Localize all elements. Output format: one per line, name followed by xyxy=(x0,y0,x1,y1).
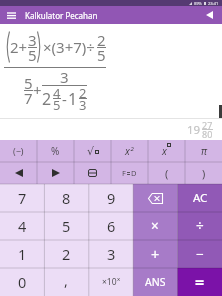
staticText: − xyxy=(196,245,204,263)
staticText: x² xyxy=(125,144,134,158)
staticText: - xyxy=(62,89,67,109)
staticText: 80 xyxy=(202,128,213,140)
button[interactable]: ×10 xyxy=(89,268,133,296)
staticText: 5 xyxy=(97,45,106,65)
button[interactable]: 0 xyxy=(0,268,44,296)
staticText: 3 xyxy=(60,67,69,87)
staticText: + xyxy=(151,244,160,264)
button[interactable]: 1 xyxy=(0,240,44,268)
button[interactable]: 2 xyxy=(44,240,88,268)
button[interactable]: % xyxy=(37,140,74,162)
staticText: x xyxy=(117,275,121,283)
staticText: = xyxy=(195,271,205,293)
staticText: ) xyxy=(202,166,206,181)
staticText: √ xyxy=(87,145,95,158)
button[interactable]: (−) xyxy=(0,140,37,162)
staticText: x xyxy=(162,144,167,158)
button[interactable]: , xyxy=(44,268,88,296)
staticText: ×(3+7)÷ xyxy=(43,37,95,57)
button[interactable]: 7 xyxy=(0,184,44,212)
staticText: 2 xyxy=(42,88,52,110)
staticText: D xyxy=(131,168,137,178)
staticText: 4 xyxy=(18,216,27,236)
staticText: F xyxy=(122,168,126,178)
staticText: 0 xyxy=(18,272,27,292)
staticText: 3 xyxy=(79,96,87,114)
staticText: 3 xyxy=(28,30,37,50)
staticText: ×10 xyxy=(102,276,117,288)
staticText: 23:41 xyxy=(208,1,219,6)
button[interactable]: 5 xyxy=(44,212,88,240)
staticText: % xyxy=(51,144,60,158)
staticText: , xyxy=(64,271,68,290)
staticText: 1 xyxy=(68,88,78,110)
button[interactable]: ÷ xyxy=(178,212,222,240)
staticText: ÷ xyxy=(196,217,204,235)
button[interactable]: 8 xyxy=(44,184,88,212)
staticText: 7 xyxy=(18,188,27,208)
button[interactable]: 6 xyxy=(89,212,133,240)
staticText: + xyxy=(33,80,42,100)
button[interactable]: ANS xyxy=(133,268,177,296)
button[interactable] xyxy=(133,184,177,212)
staticText: AC xyxy=(193,190,208,206)
button[interactable]: ) xyxy=(185,162,222,184)
staticText: 2 xyxy=(97,30,106,50)
button[interactable]: F xyxy=(111,162,148,184)
staticText: 4 xyxy=(53,84,61,102)
button[interactable] xyxy=(37,162,74,184)
button[interactable]: 9 xyxy=(89,184,133,212)
staticText: 3 xyxy=(107,244,116,264)
staticText: 6 xyxy=(107,216,116,236)
staticText: Kalkulator Pecahan xyxy=(25,10,98,21)
button[interactable] xyxy=(5,9,17,21)
staticText: 2 xyxy=(79,84,87,102)
button[interactable]: × xyxy=(133,212,177,240)
button[interactable]: x xyxy=(148,140,185,162)
staticText: 5 xyxy=(53,96,61,114)
staticText: (−) xyxy=(13,145,24,157)
staticText: 27 xyxy=(202,119,213,131)
staticText: ANS xyxy=(145,275,166,289)
button[interactable]: x² xyxy=(111,140,148,162)
button[interactable]: − xyxy=(178,240,222,268)
staticText: 89% xyxy=(194,1,202,6)
staticText: 5 xyxy=(28,45,37,65)
button[interactable]: 3 xyxy=(89,240,133,268)
button[interactable] xyxy=(204,10,214,20)
staticText: π xyxy=(201,144,207,158)
staticText: × xyxy=(151,217,159,235)
staticText: 8 xyxy=(62,188,71,208)
button[interactable]: + xyxy=(133,240,177,268)
staticText: 2+ xyxy=(10,37,28,57)
staticText: 5 xyxy=(62,216,71,236)
staticText: 7 xyxy=(24,88,33,108)
button[interactable] xyxy=(74,162,111,184)
button[interactable]: 4 xyxy=(0,212,44,240)
button[interactable]: ( xyxy=(148,162,185,184)
button[interactable]: √ xyxy=(74,140,111,162)
staticText: 1 xyxy=(18,244,27,264)
staticText: 2 xyxy=(62,244,71,264)
button[interactable]: AC xyxy=(178,184,222,212)
staticText: 9 xyxy=(107,188,116,208)
staticText: 19 xyxy=(187,122,201,138)
staticText: ( xyxy=(165,166,169,181)
staticText: 5 xyxy=(24,73,33,93)
button[interactable] xyxy=(0,162,37,184)
button[interactable]: = xyxy=(178,268,222,296)
button[interactable]: π xyxy=(185,140,222,162)
